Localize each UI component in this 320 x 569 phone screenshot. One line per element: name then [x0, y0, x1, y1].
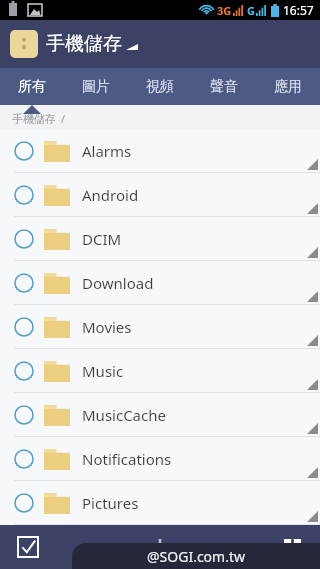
button[interactable]: MusicCache: [0, 393, 320, 437]
staticText: @SOGI.com.tw: [147, 547, 245, 566]
button[interactable]: Alarms: [0, 129, 320, 173]
button[interactable]: Select all: [12, 531, 44, 563]
staticText: Movies: [82, 317, 132, 337]
staticText: Pictures: [82, 493, 139, 513]
staticText: 應用: [274, 78, 302, 96]
staticText: 手機儲存: [12, 112, 56, 126]
staticText: 3G: [217, 3, 232, 18]
staticText: Android: [82, 185, 139, 205]
staticText: 手機儲存: [46, 32, 122, 56]
staticText: MusicCache: [82, 405, 166, 425]
button[interactable]: Download: [0, 261, 320, 305]
staticText: 圖片: [82, 78, 110, 96]
staticText: 所有: [18, 78, 46, 96]
staticText: 視頻: [146, 78, 174, 96]
button[interactable]: 應用: [256, 68, 320, 105]
staticText: 16:57: [283, 2, 314, 18]
staticText: 聲音: [210, 78, 238, 96]
button[interactable]: 圖片: [64, 68, 128, 105]
button[interactable]: 手機儲存: [10, 30, 138, 58]
staticText: Alarms: [82, 141, 132, 161]
staticText: Download: [82, 273, 154, 293]
button[interactable]: Pictures: [0, 481, 320, 525]
staticText: Music: [82, 361, 124, 381]
button[interactable]: Add: [142, 529, 178, 565]
button[interactable]: Android: [0, 173, 320, 217]
staticText: G: [247, 3, 255, 18]
button[interactable]: 所有: [0, 68, 64, 105]
button[interactable]: Grid view: [276, 531, 308, 563]
button[interactable]: 聲音: [192, 68, 256, 105]
button[interactable]: 視頻: [128, 68, 192, 105]
button[interactable]: Movies: [0, 305, 320, 349]
button[interactable]: DCIM: [0, 217, 320, 261]
staticText: /: [61, 111, 66, 126]
button[interactable]: Notifications: [0, 437, 320, 481]
staticText: DCIM: [82, 229, 122, 249]
button[interactable]: Music: [0, 349, 320, 393]
staticText: Notifications: [82, 449, 172, 469]
